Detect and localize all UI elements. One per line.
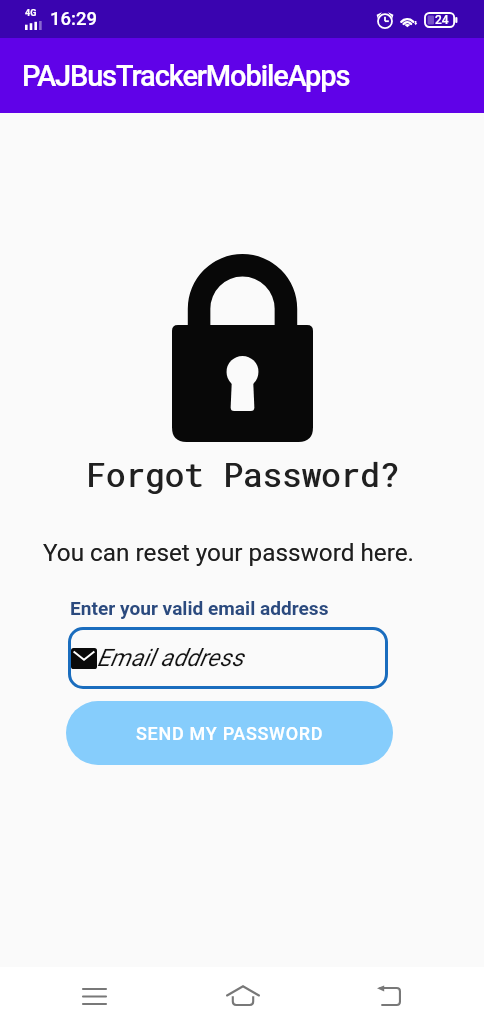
button[interactable]: SEND MY PASSWORD xyxy=(66,701,393,765)
staticText: Forgot Password? xyxy=(86,453,399,496)
button[interactable]: Email address xyxy=(68,627,388,689)
button[interactable]: Home xyxy=(215,967,271,1023)
staticText: You can reset your password here. xyxy=(43,538,414,566)
staticText: 24 xyxy=(435,13,449,27)
staticText: Enter your valid email address xyxy=(70,597,329,619)
button[interactable]: Recent apps xyxy=(66,968,122,1024)
staticText: 16:29 xyxy=(50,8,97,30)
staticText: You can reset your password here. xyxy=(43,538,414,566)
button[interactable]: Back xyxy=(361,968,417,1024)
staticText: Forgot Password? xyxy=(87,453,400,496)
staticText: SEND MY PASSWORD xyxy=(136,723,324,744)
staticText: 4G xyxy=(25,8,37,19)
staticText: Email address xyxy=(97,644,244,672)
staticText: PAJBusTrackerMobileApps xyxy=(22,59,350,93)
